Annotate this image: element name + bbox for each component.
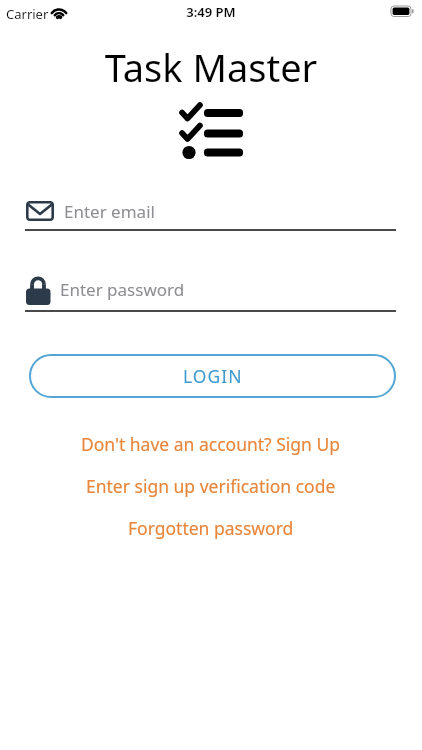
staticText: Enter password <box>60 278 185 301</box>
staticText: LOGIN <box>183 364 243 388</box>
staticText: Carrier <box>6 5 49 23</box>
button[interactable]: Forgotten password <box>0 515 422 541</box>
staticText: Task Master <box>0 41 422 93</box>
button[interactable]: Enter email <box>25 194 396 229</box>
button[interactable]: Enter password <box>25 272 396 307</box>
button[interactable]: Enter sign up verification code <box>0 473 422 499</box>
button[interactable]: Don't have an account? Sign Up <box>0 431 422 457</box>
button[interactable]: LOGIN <box>29 354 396 398</box>
staticText: Enter email <box>64 200 155 223</box>
staticText: Don't have an account? Sign Up <box>81 432 341 456</box>
staticText: Enter sign up verification code <box>86 474 336 498</box>
staticText: 3:49 PM <box>0 3 422 21</box>
staticText: Forgotten password <box>128 516 294 540</box>
